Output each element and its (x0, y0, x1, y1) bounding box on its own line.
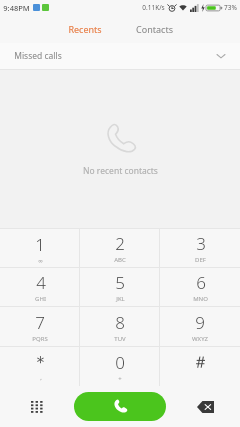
button[interactable]: ＊ (0, 347, 80, 386)
staticText: 4 (36, 271, 46, 294)
button[interactable]: Contacts (126, 18, 183, 40)
button[interactable]: 5 (80, 268, 160, 306)
staticText: TUV (114, 335, 126, 343)
staticText: 6 (196, 271, 206, 294)
staticText: MNO (193, 295, 208, 303)
staticText: DEF (195, 256, 206, 264)
staticText: ＊ (32, 352, 49, 373)
staticText: Missed calls (14, 50, 62, 62)
button[interactable]: 9 (160, 307, 240, 346)
staticText: 1 (35, 233, 45, 256)
button[interactable]: Recents (58, 18, 112, 40)
staticText: 3 (196, 232, 206, 255)
staticText: Contacts (136, 23, 173, 35)
staticText: ABC (114, 256, 126, 264)
staticText: 0 (115, 351, 125, 374)
staticText: Recents (68, 23, 102, 35)
staticText: 7 (35, 311, 45, 334)
staticText: ∞ (38, 257, 43, 264)
button[interactable]: 2 (80, 229, 160, 267)
staticText: 9:48PM (3, 3, 30, 13)
button[interactable]: Dialpad (24, 394, 50, 420)
staticText: , (40, 374, 42, 382)
staticText: 9 (195, 311, 205, 334)
button[interactable]: 0 (80, 347, 160, 386)
button[interactable]: ＃ (160, 347, 240, 386)
staticText: 2 (115, 232, 125, 255)
staticText: WXYZ (192, 335, 208, 343)
button[interactable]: 1 (0, 229, 80, 267)
staticText: GHI (35, 295, 46, 303)
staticText: ＃ (192, 352, 209, 373)
button[interactable]: 8 (80, 307, 160, 346)
staticText: JKL (116, 295, 125, 303)
staticText: PQRS (32, 335, 48, 343)
staticText: 73% (224, 3, 237, 12)
button[interactable]: 6 (160, 268, 240, 306)
button[interactable]: Call (74, 392, 166, 421)
button[interactable]: Delete (192, 394, 218, 420)
staticText: + (118, 375, 122, 383)
button[interactable]: 3 (160, 229, 240, 267)
staticText: 8 (115, 311, 125, 334)
button[interactable]: 4 (0, 268, 80, 306)
button[interactable]: 7 (0, 307, 80, 346)
staticText: 5 (115, 271, 125, 294)
staticText: No recent contacts (83, 165, 158, 177)
staticText: 0.11K/s (142, 3, 165, 12)
button[interactable]: Missed calls (0, 43, 240, 69)
